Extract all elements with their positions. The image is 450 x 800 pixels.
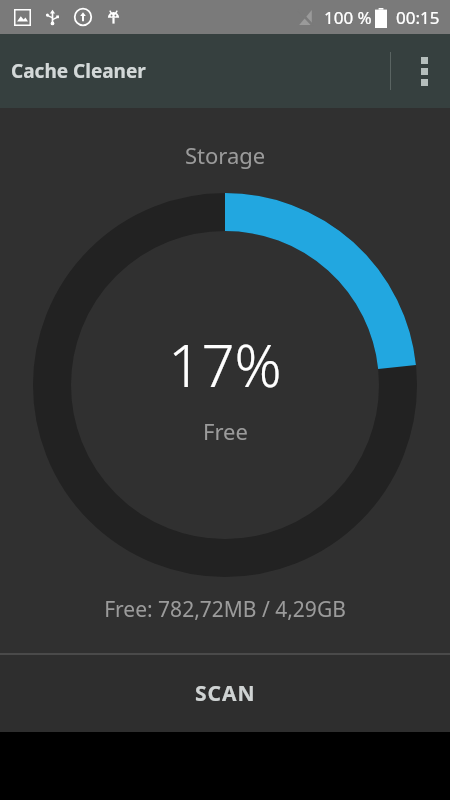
button[interactable]: More options: [398, 34, 450, 108]
staticText: Free: [203, 416, 248, 446]
button[interactable]: SCAN: [0, 655, 450, 732]
staticText: SCAN: [195, 679, 256, 708]
staticText: 100 %: [324, 6, 372, 29]
staticText: 17%: [168, 325, 282, 404]
staticText: Cache Cleaner: [11, 58, 146, 84]
staticText: 00:15: [396, 6, 440, 29]
staticText: Storage: [185, 140, 266, 170]
staticText: Free: 782,72MB / 4,29GB: [104, 595, 346, 624]
